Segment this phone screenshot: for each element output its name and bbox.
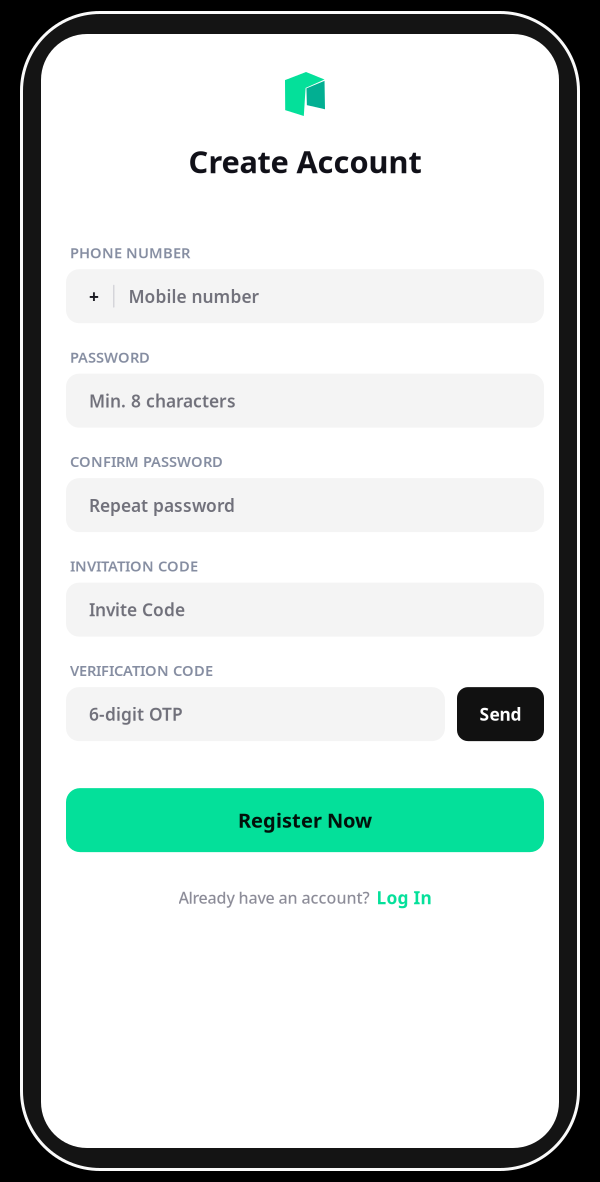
button[interactable]: Register Now bbox=[66, 788, 544, 852]
staticText: Send bbox=[479, 703, 521, 726]
staticText: Register Now bbox=[238, 807, 372, 833]
button[interactable]: Repeat password bbox=[66, 478, 544, 532]
staticText: VERIFICATION CODE bbox=[70, 661, 213, 680]
staticText: PHONE NUMBER bbox=[70, 243, 190, 262]
button[interactable]: + bbox=[66, 269, 544, 323]
staticText: Min. 8 characters bbox=[89, 389, 236, 412]
button[interactable]: 6-digit OTP bbox=[66, 687, 445, 741]
staticText: Log In bbox=[376, 886, 431, 909]
staticText: + bbox=[89, 285, 99, 308]
staticText: 6-digit OTP bbox=[89, 703, 183, 726]
staticText: Already have an account? bbox=[178, 887, 369, 908]
staticText: CONFIRM PASSWORD bbox=[70, 452, 223, 471]
staticText: PASSWORD bbox=[70, 347, 150, 367]
button[interactable]: Already have an account? bbox=[178, 886, 431, 909]
staticText: INVITATION CODE bbox=[70, 556, 198, 576]
button[interactable]: Min. 8 characters bbox=[66, 374, 544, 428]
button[interactable]: Invite Code bbox=[66, 583, 544, 637]
button[interactable]: Send bbox=[457, 687, 544, 741]
staticText: Mobile number bbox=[128, 285, 259, 308]
staticText: Repeat password bbox=[89, 494, 235, 517]
staticText: Create Account bbox=[188, 141, 421, 182]
staticText: Invite Code bbox=[89, 598, 185, 621]
